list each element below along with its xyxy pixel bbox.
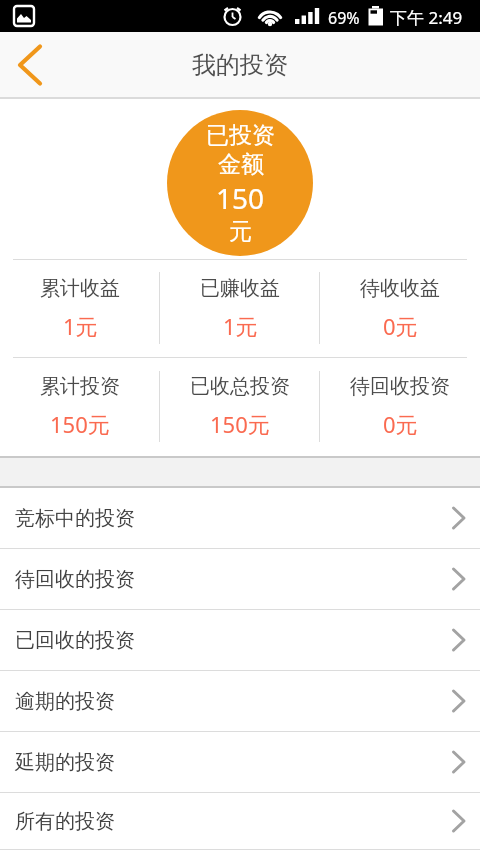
staticText: 金额 — [218, 150, 264, 179]
button[interactable]: 待回收的投资 — [0, 549, 480, 610]
staticText: 150元 — [50, 409, 110, 439]
staticText: 69% — [328, 7, 360, 29]
staticText: 逾期的投资 — [15, 689, 115, 714]
staticText: 已投资 — [206, 121, 275, 150]
staticText: 已回收的投资 — [15, 628, 135, 653]
staticText: 150元 — [210, 409, 270, 439]
staticText: 累计投资 — [40, 374, 120, 399]
staticText: 待收收益 — [360, 276, 440, 301]
staticText: 待回收的投资 — [15, 567, 135, 592]
staticText: 0元 — [383, 409, 418, 439]
staticText: 累计收益 — [40, 276, 120, 301]
button[interactable]: 所有的投资 — [0, 793, 480, 850]
staticText: 所有的投资 — [15, 809, 115, 834]
staticText: 已赚收益 — [200, 276, 280, 301]
button[interactable]: 延期的投资 — [0, 732, 480, 793]
button[interactable]: 逾期的投资 — [0, 671, 480, 732]
staticText: 已收总投资 — [190, 374, 290, 399]
staticText: 0元 — [383, 311, 418, 341]
staticText: 我的投资 — [192, 50, 288, 80]
staticText: 1元 — [223, 311, 258, 341]
staticText: 延期的投资 — [15, 750, 115, 775]
staticText: 元 — [229, 217, 252, 246]
button[interactable] — [0, 32, 56, 97]
button[interactable]: 已回收的投资 — [0, 610, 480, 671]
staticText: 竞标中的投资 — [15, 506, 135, 531]
staticText: 1元 — [63, 311, 98, 341]
staticText: 150 — [216, 179, 265, 217]
staticText: 下午 2:49 — [390, 6, 463, 29]
button[interactable]: 竞标中的投资 — [0, 488, 480, 549]
staticText: 待回收投资 — [350, 374, 450, 399]
